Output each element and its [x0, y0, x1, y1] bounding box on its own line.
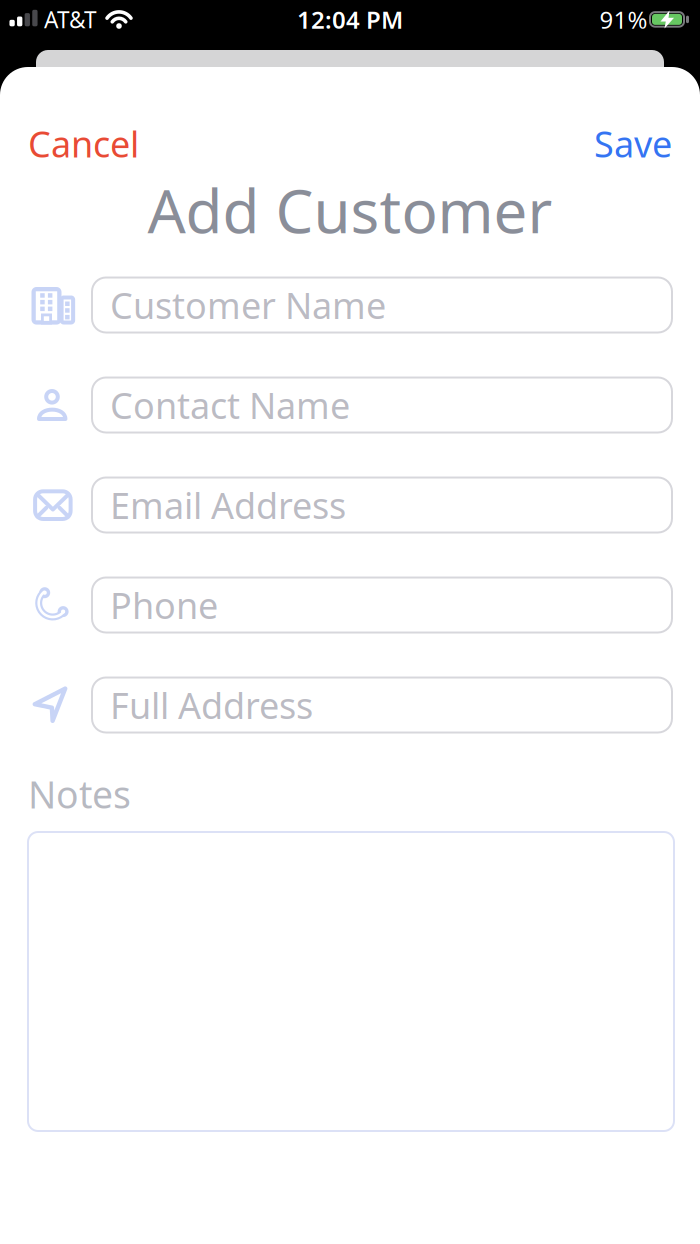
button[interactable]: Save — [594, 120, 672, 167]
staticText: 12:04 PM — [297, 4, 403, 35]
button[interactable]: Contact Name — [91, 376, 673, 433]
button[interactable]: Cancel — [28, 120, 139, 167]
staticText: Email Address — [110, 481, 346, 529]
staticText: Save — [594, 120, 672, 167]
staticText: Phone — [110, 581, 218, 629]
staticText: Full Address — [110, 681, 313, 729]
button[interactable]: Phone — [91, 576, 673, 633]
staticText: 91% — [599, 4, 647, 35]
button[interactable]: Full Address — [91, 676, 673, 733]
staticText: Add Customer — [147, 170, 552, 250]
staticText: Customer Name — [110, 281, 386, 329]
button[interactable]: Customer Name — [91, 276, 673, 333]
staticText: AT&T — [44, 4, 97, 34]
staticText: Notes — [28, 769, 131, 819]
button[interactable] — [27, 831, 675, 1132]
staticText: Cancel — [28, 120, 139, 167]
button[interactable]: Email Address — [91, 476, 673, 533]
staticText: Contact Name — [110, 381, 350, 429]
